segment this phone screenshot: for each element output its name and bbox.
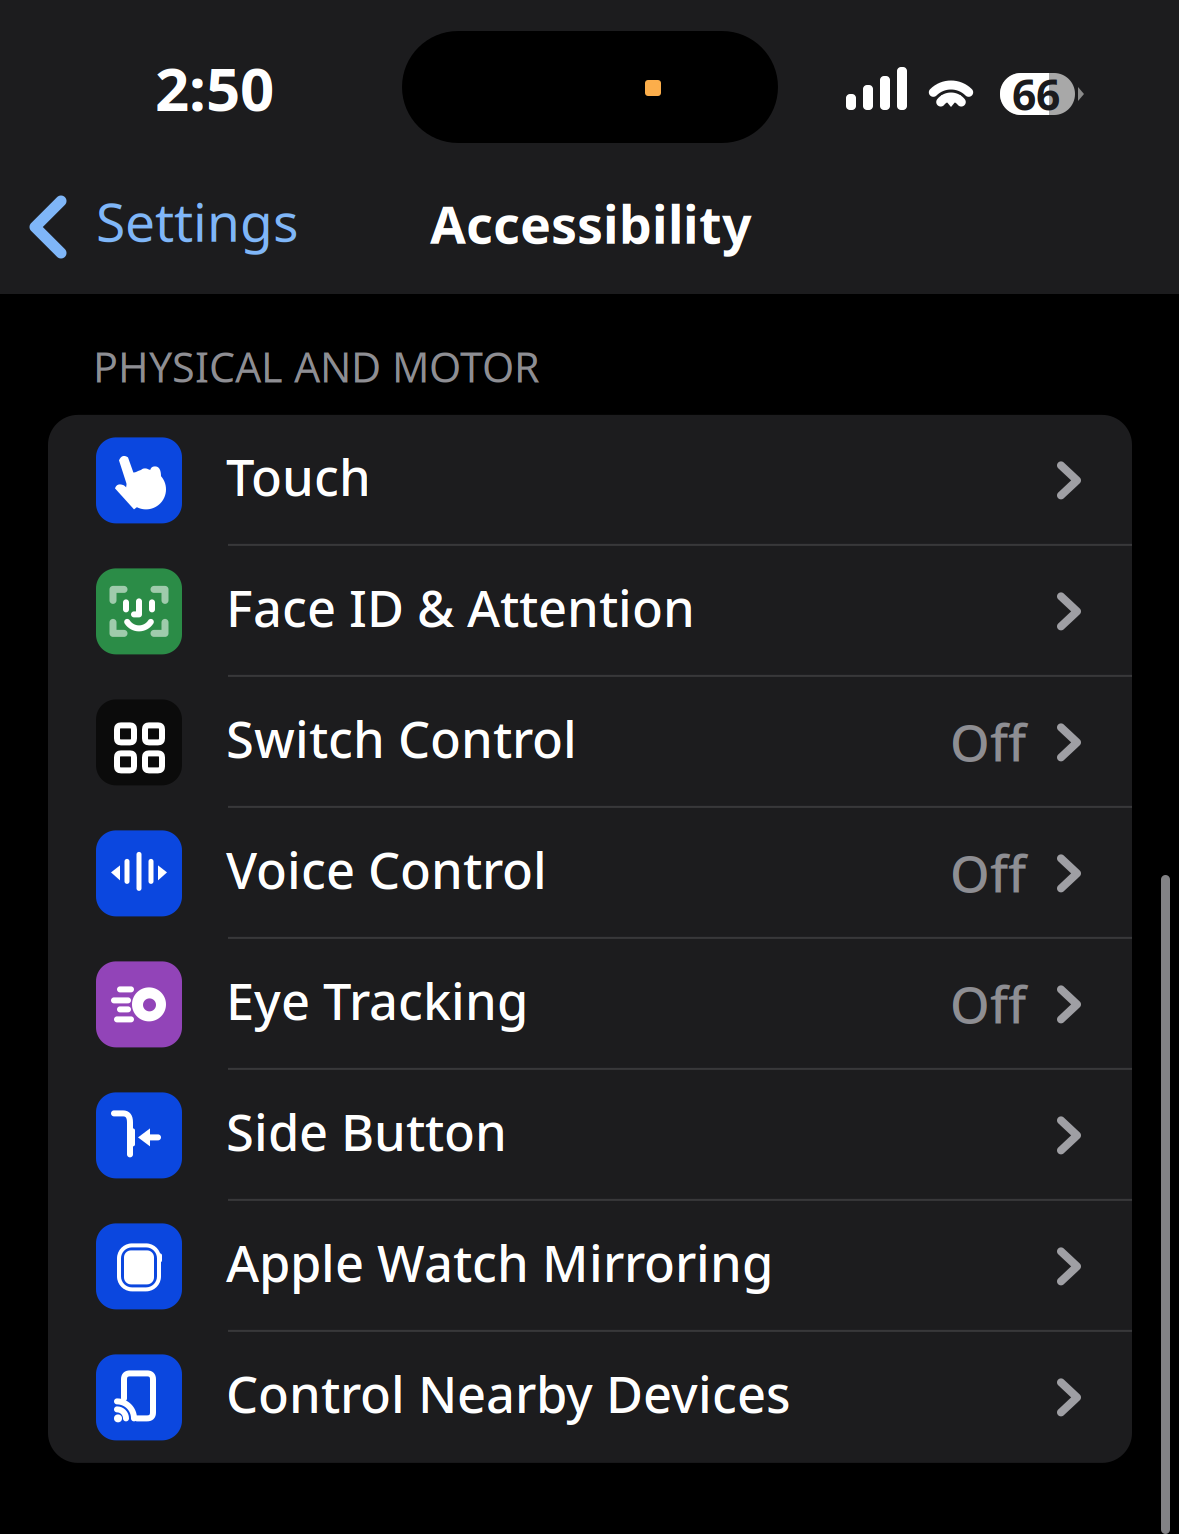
staticText: PHYSICAL AND MOTOR — [93, 339, 540, 394]
staticText: Control Nearby Devices — [226, 1360, 791, 1427]
button[interactable]: Apple Watch Mirroring — [48, 1201, 1132, 1332]
staticText: Apple Watch Mirroring — [226, 1229, 773, 1296]
button[interactable]: Settings — [22, 181, 317, 261]
staticText: Off — [950, 708, 1026, 775]
staticText: Side Button — [226, 1098, 507, 1165]
button[interactable]: Face ID & Attention — [48, 546, 1132, 677]
button[interactable]: Touch — [48, 415, 1132, 546]
button[interactable]: Switch Control — [48, 677, 1132, 808]
button[interactable]: Voice Control — [48, 808, 1132, 939]
staticText: Touch — [226, 443, 371, 510]
staticText: Switch Control — [226, 705, 577, 772]
button[interactable]: Control Nearby Devices — [48, 1332, 1132, 1463]
staticText: Off — [950, 970, 1026, 1037]
button[interactable]: Eye Tracking — [48, 939, 1132, 1070]
staticText: 66 — [1012, 66, 1060, 122]
staticText: Voice Control — [226, 836, 547, 903]
staticText: Off — [950, 839, 1026, 906]
staticText: Eye Tracking — [226, 967, 528, 1034]
button[interactable]: Side Button — [48, 1070, 1132, 1201]
staticText: Accessibility — [430, 189, 752, 258]
staticText: 2:50 — [155, 48, 274, 128]
staticText: Face ID & Attention — [226, 574, 695, 641]
staticText: Settings — [96, 186, 299, 256]
